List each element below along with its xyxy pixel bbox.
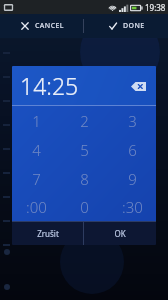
staticText: DONE — [123, 21, 145, 31]
button[interactable]: 7 — [12, 164, 60, 193]
staticText: 0 — [80, 197, 89, 217]
staticText: 5 — [80, 140, 89, 160]
button[interactable]: Zrušit — [12, 222, 83, 245]
staticText: :30 — [122, 197, 143, 217]
button[interactable]: DONE — [84, 14, 168, 38]
staticText: 6 — [128, 140, 137, 160]
button[interactable]: 8 — [60, 164, 108, 193]
staticText: 9 — [128, 169, 137, 189]
staticText: 14:25 — [20, 70, 79, 101]
button[interactable]: :00 — [12, 193, 60, 221]
button[interactable]: 2 — [60, 106, 108, 135]
button[interactable]: 4 — [12, 135, 60, 164]
button[interactable]: Backspace — [128, 78, 148, 94]
button[interactable]: CANCEL — [0, 14, 83, 38]
staticText: :00 — [26, 197, 47, 217]
button[interactable]: :30 — [108, 193, 156, 221]
button[interactable]: 6 — [108, 135, 156, 164]
staticText: CANCEL — [35, 21, 64, 31]
staticText: 7 — [32, 169, 41, 189]
button[interactable]: 5 — [60, 135, 108, 164]
button[interactable]: 3 — [108, 106, 156, 135]
staticText: 8 — [80, 169, 89, 189]
staticText: Zrušit — [37, 228, 59, 239]
button[interactable]: 9 — [108, 164, 156, 193]
staticText: 4 — [32, 140, 41, 160]
staticText: 19:38 — [145, 2, 166, 13]
staticText: 1 — [32, 111, 41, 131]
button[interactable]: 0 — [60, 193, 108, 221]
button[interactable]: 1 — [12, 106, 60, 135]
staticText: 3 — [128, 111, 137, 131]
button[interactable]: OK — [84, 222, 156, 245]
staticText: 2 — [80, 111, 89, 131]
staticText: OK — [114, 228, 126, 239]
